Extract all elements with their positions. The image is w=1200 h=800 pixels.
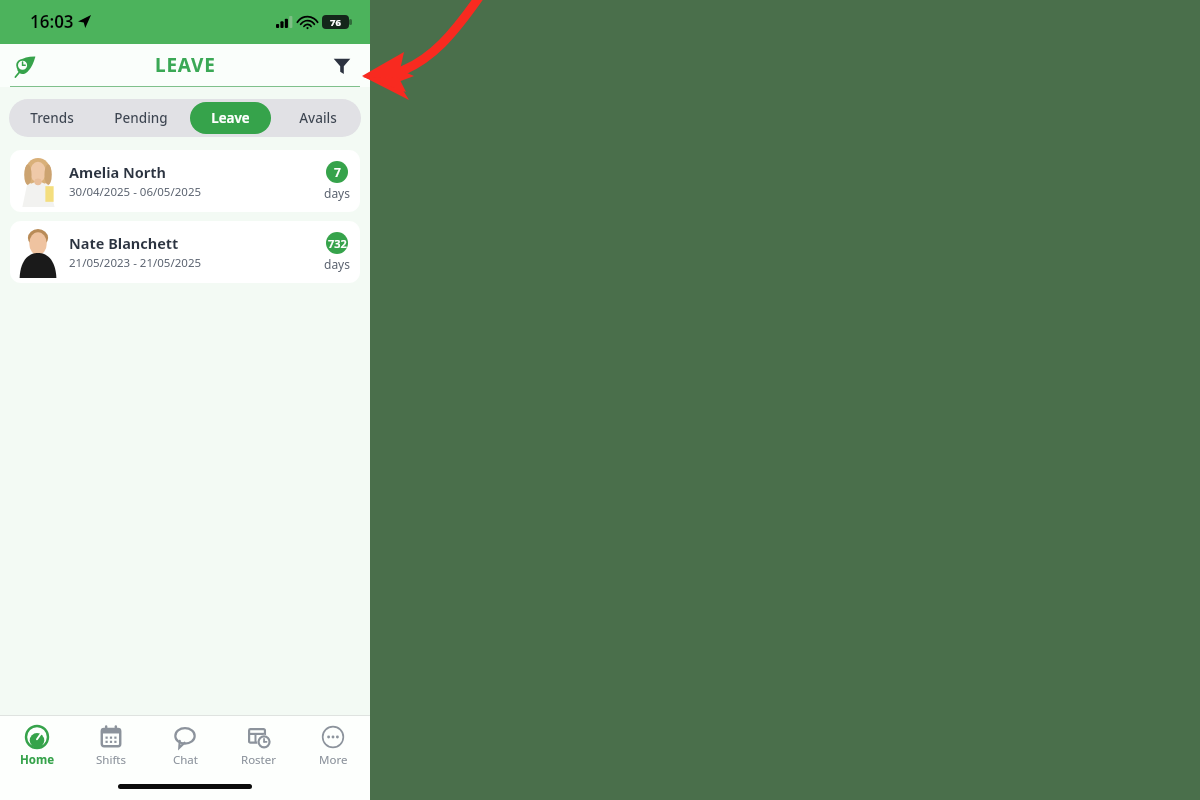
staticText: Shifts xyxy=(96,752,127,768)
button[interactable]: Leave xyxy=(190,102,271,134)
button[interactable]: Trends xyxy=(12,102,92,134)
button[interactable]: Filter xyxy=(324,48,360,84)
button[interactable]: Shifts xyxy=(74,716,148,778)
staticText: 30/04/2025 - 06/05/2025 xyxy=(69,184,202,200)
staticText: Avails xyxy=(299,109,337,127)
staticText: Leave xyxy=(211,109,250,127)
staticText: 16:03 xyxy=(30,10,74,33)
staticText: Amelia North xyxy=(69,162,166,182)
staticText: Nate Blanchett xyxy=(69,233,179,253)
staticText: days xyxy=(324,256,350,272)
staticText: Trends xyxy=(30,109,74,127)
button[interactable]: App logo xyxy=(8,49,42,83)
button[interactable]: Roster xyxy=(222,716,296,778)
staticText: 21/05/2023 - 21/05/2025 xyxy=(69,255,202,271)
staticText: Roster xyxy=(241,752,277,768)
staticText: More xyxy=(319,752,348,768)
button[interactable]: Amelia North xyxy=(10,150,360,212)
staticText: Home xyxy=(20,752,55,768)
staticText: 7 xyxy=(334,164,341,180)
button[interactable]: Nate Blanchett xyxy=(10,221,360,283)
staticText: days xyxy=(324,185,350,201)
button[interactable]: Chat xyxy=(148,716,222,778)
staticText: Chat xyxy=(173,752,198,768)
button[interactable]: Home xyxy=(0,716,74,778)
button[interactable]: Pending xyxy=(98,102,184,134)
button[interactable]: More xyxy=(296,716,370,778)
staticText: 732 xyxy=(328,236,347,251)
staticText: Pending xyxy=(114,109,168,127)
button[interactable]: Avails xyxy=(277,102,358,134)
staticText: LEAVE xyxy=(155,52,216,78)
staticText: 76 xyxy=(330,16,341,29)
